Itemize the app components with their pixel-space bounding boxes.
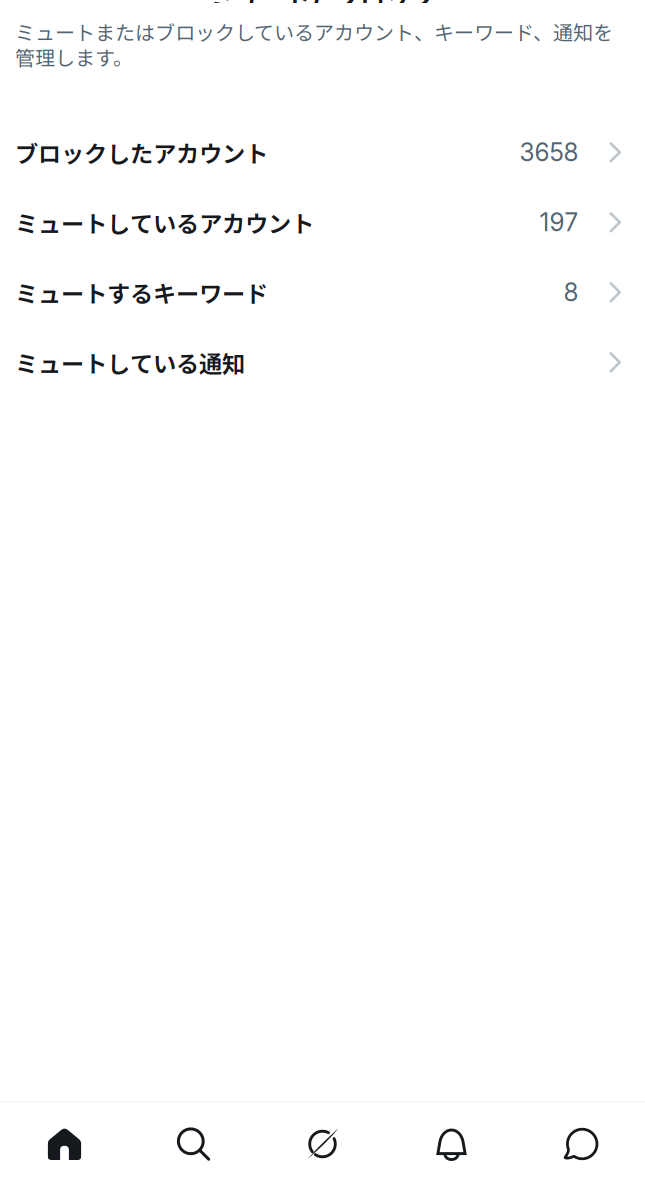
button[interactable]: Home: [0, 1102, 129, 1200]
staticText: ミュートしているアカウント: [15, 205, 314, 239]
button[interactable]: Messages: [516, 1102, 645, 1200]
staticText: 8: [563, 277, 578, 307]
staticText: ミュートするキーワード: [15, 275, 268, 309]
staticText: ブロックしたアカウント: [15, 135, 268, 169]
staticText: 3658: [519, 137, 578, 167]
button[interactable]: ブロックしたアカウント: [0, 117, 645, 187]
button[interactable]: Grok: [258, 1102, 387, 1200]
button[interactable]: Notifications: [387, 1102, 516, 1200]
button[interactable]: ミュートするキーワード: [0, 257, 645, 327]
staticText: 197: [539, 207, 578, 237]
button[interactable]: Search: [129, 1102, 258, 1200]
button[interactable]: ミュートしているアカウント: [0, 187, 645, 257]
staticText: ミュートまたはブロックしているアカウント、キーワード、通知を管理します。: [15, 17, 613, 71]
staticText: ミュートしている通知: [15, 345, 245, 379]
button[interactable]: ミュートしている通知: [0, 327, 645, 397]
